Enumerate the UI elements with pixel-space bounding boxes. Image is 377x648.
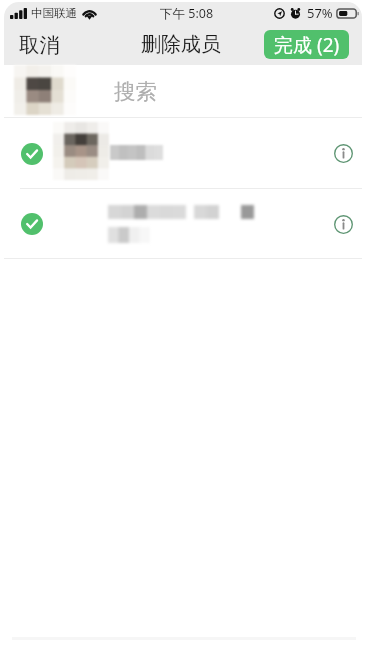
staticText: 下午 5:08 (160, 5, 214, 22)
button[interactable]: More information (326, 207, 360, 241)
staticText: 取消 (19, 32, 60, 58)
other: Selected (21, 213, 43, 235)
button[interactable]: 搜索 (4, 64, 362, 117)
button[interactable]: 取消 (13, 27, 66, 63)
button[interactable]: Selected (4, 118, 362, 188)
button[interactable]: 完成 (2) (264, 30, 349, 59)
staticText: 中国联通 (31, 6, 77, 20)
staticText: 57% (307, 4, 333, 22)
staticText: 搜索 (114, 78, 157, 105)
other: Selected (21, 143, 43, 165)
staticText: 删除成员 (141, 32, 221, 57)
button[interactable]: More information (326, 136, 360, 170)
button[interactable]: Selected (4, 189, 362, 258)
staticText: 完成 (2) (274, 32, 340, 58)
